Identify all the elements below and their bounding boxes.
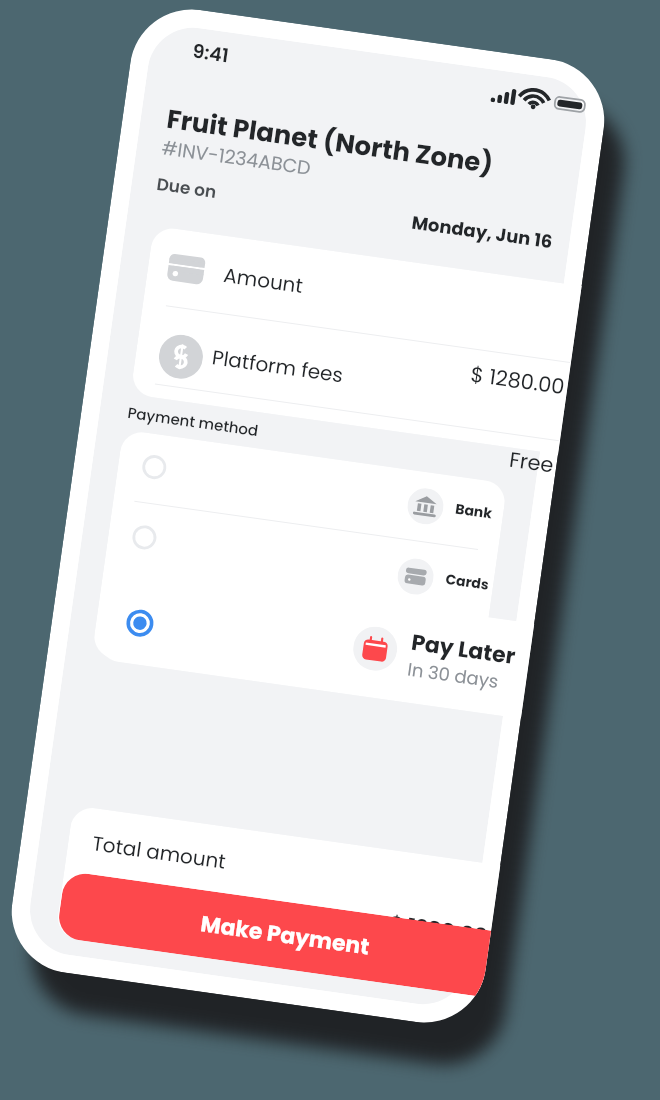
staticText: Fruit Planet (North Zone) [164,101,496,182]
staticText: In 30 days [406,656,501,694]
staticText: 9:41 [191,37,231,69]
button[interactable]: Bank [136,442,485,538]
staticText: Bank [454,498,493,523]
staticText: Amount [222,261,305,300]
staticText: Free [353,423,555,480]
staticText: #INV-1234ABCD [160,134,313,182]
staticText: Cards [444,569,491,595]
button[interactable] [95,564,534,719]
button[interactable] [130,226,582,454]
staticText: Due on [155,172,219,204]
staticText: Payment method [126,402,260,441]
staticText: Pay Later [409,627,518,672]
staticText: Platform fees [210,343,345,389]
staticText: $ 1280.00 [287,894,489,952]
button[interactable]: Make Payment [56,871,491,997]
staticText: Monday, Jun 16 [410,210,554,254]
button[interactable]: Cards [126,513,475,608]
staticText: $ 1280.00 [364,345,566,402]
staticText: Make Payment [58,888,489,979]
staticText: Total amount [90,829,228,876]
